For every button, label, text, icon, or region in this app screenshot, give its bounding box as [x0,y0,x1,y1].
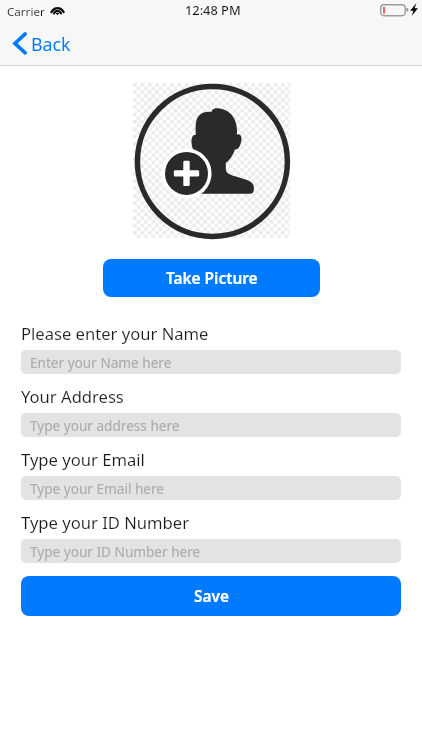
staticText: Type your Email [21,448,145,470]
staticText: Carrier [7,4,45,20]
staticText: Type your address here [30,416,180,435]
button[interactable]: Back [0,21,72,66]
staticText: Take Picture [166,268,258,289]
staticText: Back [31,32,71,56]
staticText: Your Address [21,385,124,407]
button[interactable]: Type your ID Number here [21,539,401,563]
button[interactable]: Take Picture [103,259,320,297]
button[interactable]: Type your address here [21,413,401,437]
button[interactable]: Save [21,576,401,616]
staticText: Type your Email here [30,479,165,498]
staticText: Save [194,586,229,607]
button[interactable]: Enter your Name here [21,350,401,374]
staticText: 12:48 PM [185,1,241,18]
button[interactable]: Type your Email here [21,476,401,500]
staticText: Type your ID Number here [30,542,201,561]
staticText: Type your ID Number [21,511,190,533]
staticText: Enter your Name here [30,353,172,372]
staticText: Please enter your Name [21,322,209,344]
